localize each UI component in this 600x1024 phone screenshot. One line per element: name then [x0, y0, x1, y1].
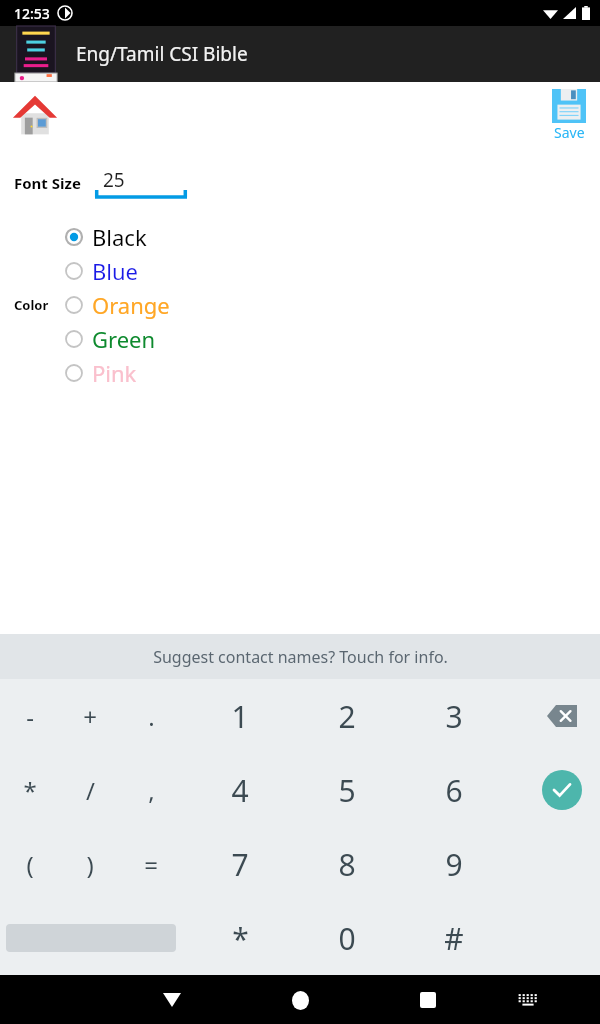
staticText: 12:53 [14, 4, 50, 23]
staticText: Pink [92, 358, 137, 388]
staticText: ( [26, 848, 34, 881]
button[interactable]: Enter [538, 766, 586, 814]
button[interactable]: - [0, 679, 60, 753]
staticText: , [148, 774, 155, 807]
button[interactable]: ( [0, 827, 60, 901]
button[interactable]: 8 [317, 827, 377, 901]
button[interactable]: Home [10, 90, 60, 140]
staticText: / [86, 774, 95, 807]
staticText: 9 [445, 844, 463, 885]
button[interactable]: Pink [64, 356, 137, 390]
staticText: Blue [92, 256, 138, 286]
button[interactable]: Backspace [538, 692, 586, 740]
button[interactable]: Suggest contact names? Touch for info. [0, 634, 600, 679]
button[interactable]: 1 [210, 679, 270, 753]
button[interactable]: 25 [95, 166, 187, 200]
button[interactable]: Save [552, 89, 586, 142]
staticText: Eng/Tamil CSI Bible [76, 41, 248, 67]
staticText: 8 [338, 844, 356, 885]
staticText: 25 [103, 167, 125, 193]
staticText: * [23, 774, 37, 807]
staticText: 6 [445, 770, 463, 811]
staticText: 7 [231, 844, 249, 885]
button[interactable]: 2 [317, 679, 377, 753]
staticText: Suggest contact names? Touch for info. [153, 646, 448, 668]
staticText: 2 [338, 696, 356, 737]
staticText: Black [92, 222, 147, 252]
staticText: # [444, 918, 464, 959]
staticText: * [232, 918, 249, 959]
button[interactable]: = [121, 827, 181, 901]
button[interactable]: # [424, 901, 484, 975]
button[interactable]: Home [276, 976, 324, 1024]
button[interactable]: + [60, 679, 120, 753]
button[interactable]: 4 [210, 753, 270, 827]
button[interactable]: Black [64, 220, 147, 254]
button[interactable]: Switch keyboard [504, 976, 552, 1024]
button[interactable]: 9 [424, 827, 484, 901]
button[interactable]: Back [148, 976, 196, 1024]
button[interactable]: , [121, 753, 181, 827]
button[interactable]: 6 [424, 753, 484, 827]
staticText: . [148, 700, 155, 733]
staticText: ) [86, 848, 94, 881]
button[interactable]: 7 [210, 827, 270, 901]
button[interactable]: * [0, 753, 60, 827]
button[interactable]: 3 [424, 679, 484, 753]
staticText: 5 [338, 770, 356, 811]
staticText: + [83, 700, 97, 733]
staticText: 3 [445, 696, 463, 737]
staticText: Color [14, 296, 49, 314]
staticText: 0 [338, 918, 356, 959]
button[interactable]: 0 [317, 901, 377, 975]
button[interactable]: 5 [317, 753, 377, 827]
button[interactable]: / [60, 753, 120, 827]
staticText: 1 [231, 696, 249, 737]
staticText: = [144, 848, 158, 881]
button[interactable]: Blue [64, 254, 138, 288]
staticText: - [26, 700, 34, 733]
staticText: Font Size [14, 173, 81, 193]
button[interactable]: * [210, 901, 270, 975]
button[interactable]: Orange [64, 288, 170, 322]
button[interactable]: Green [64, 322, 156, 356]
staticText: 4 [231, 770, 249, 811]
staticText: Orange [92, 290, 170, 320]
button[interactable]: Recents [404, 976, 452, 1024]
staticText: Green [92, 324, 156, 354]
staticText: Save [554, 123, 585, 142]
button[interactable]: ) [60, 827, 120, 901]
button[interactable]: . [121, 679, 181, 753]
